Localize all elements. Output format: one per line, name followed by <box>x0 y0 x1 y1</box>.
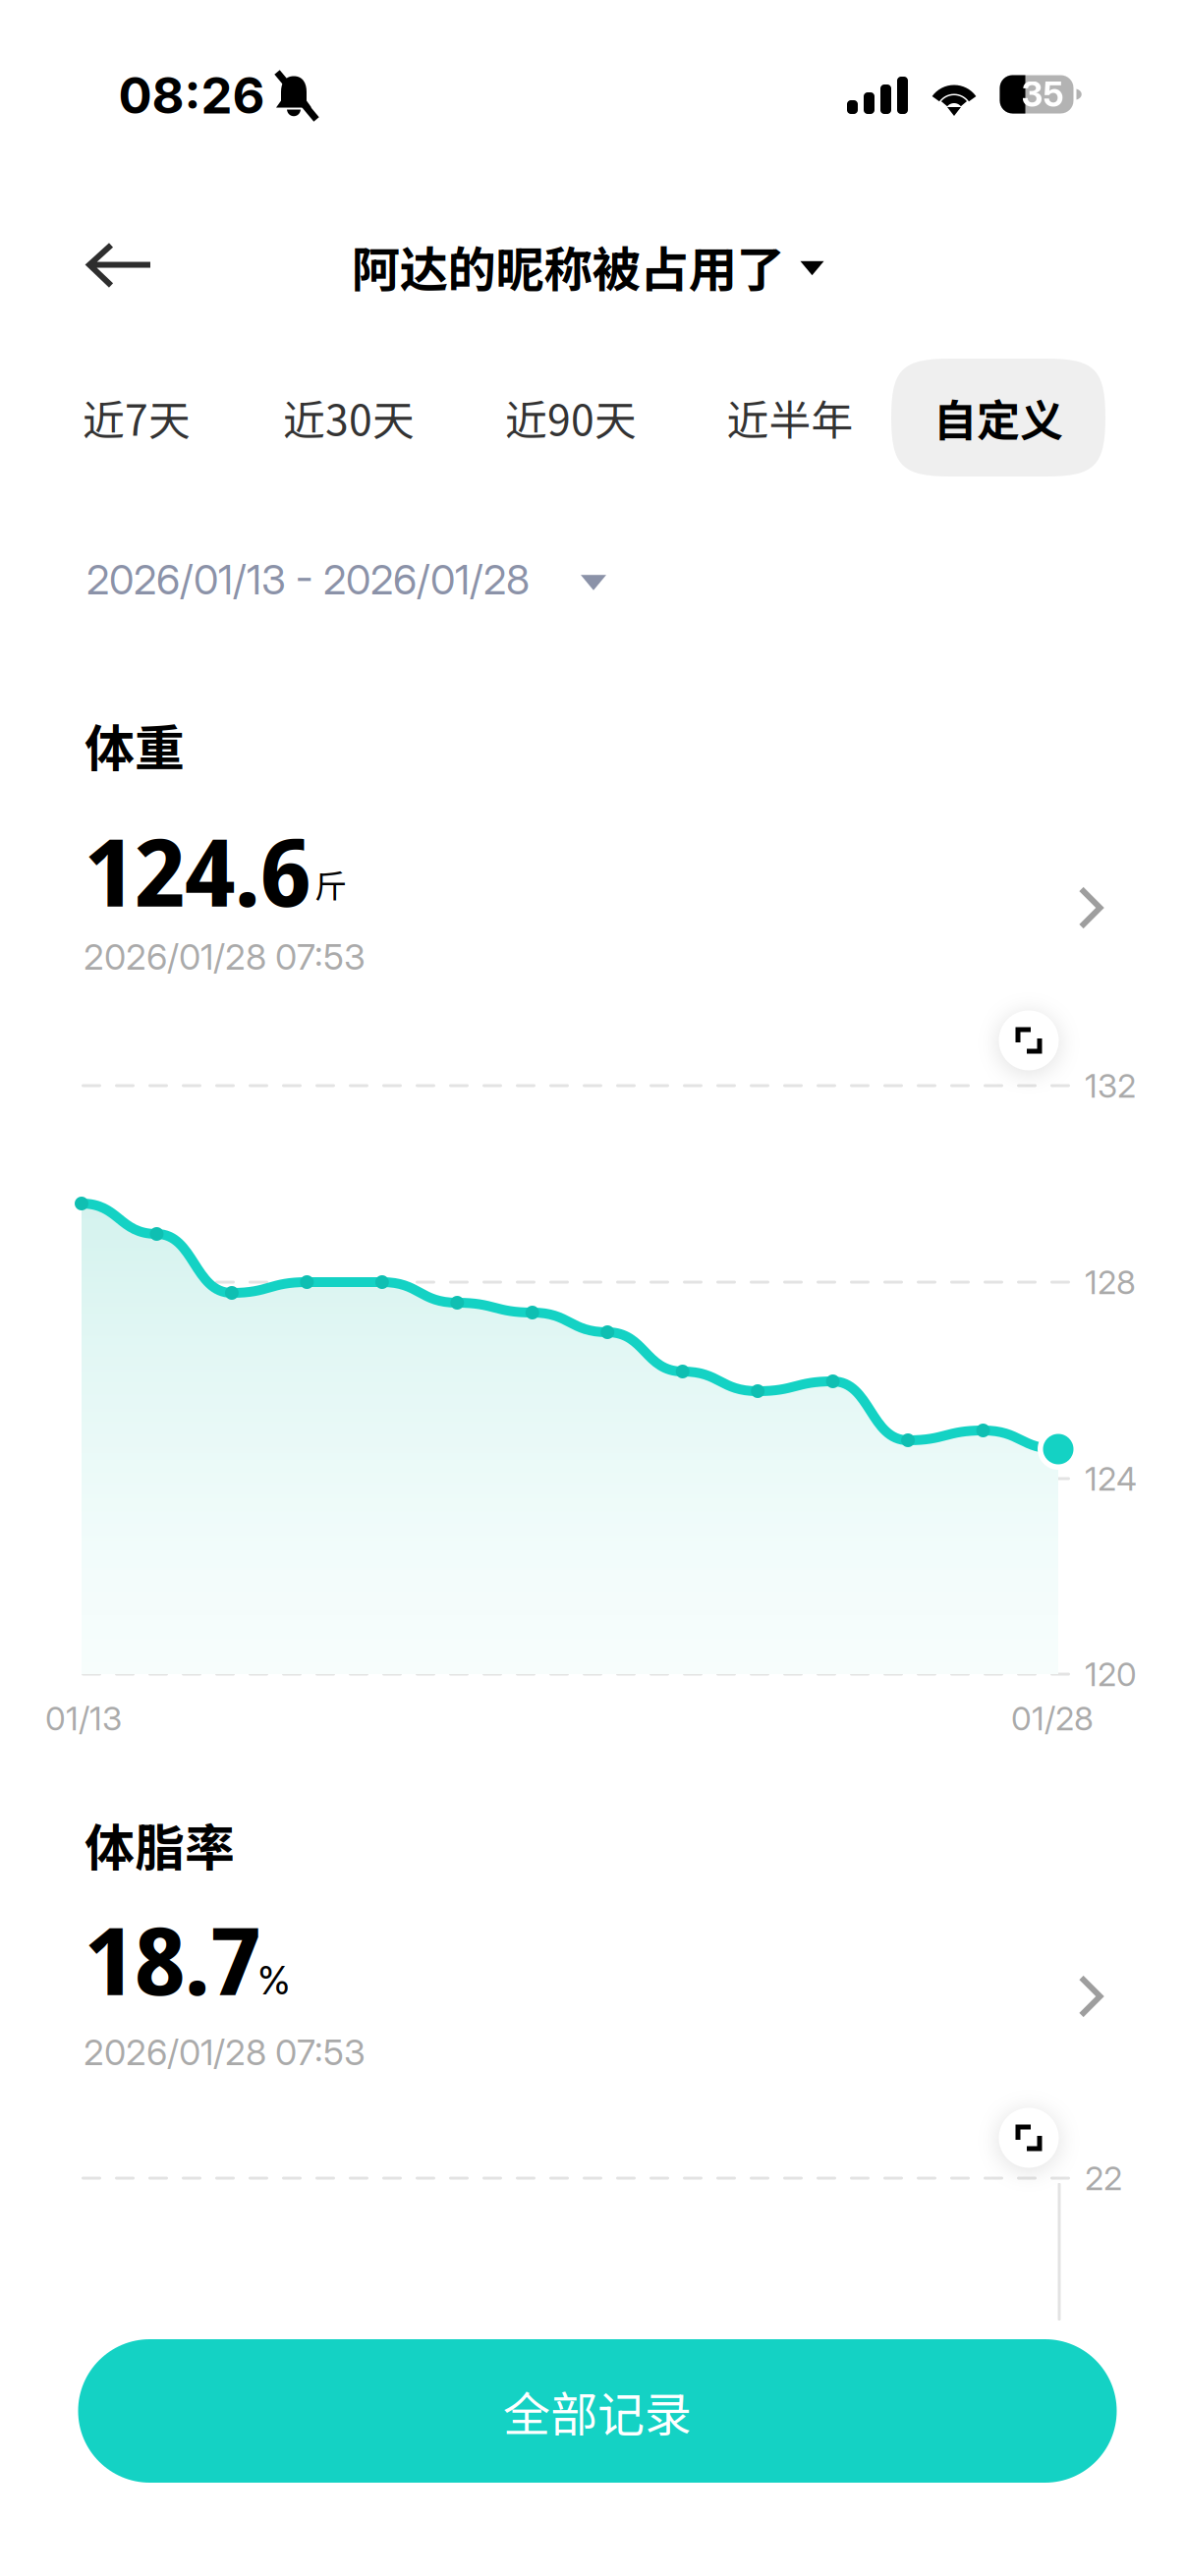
staticText: 2026/01/28 07:53 <box>84 935 366 978</box>
staticText: 近7天 <box>83 387 191 448</box>
staticText: 22 <box>1085 2158 1122 2198</box>
staticText: 124.6 <box>85 807 310 934</box>
staticText: 132 <box>1085 1066 1136 1105</box>
staticText: % <box>257 1958 291 2004</box>
staticText: 近90天 <box>505 387 637 448</box>
staticText: 2026/01/13 - 2026/01/28 <box>86 555 530 604</box>
staticText: 18.7 <box>85 1896 260 2022</box>
staticText: 阿达的昵称被占用了 <box>351 231 785 301</box>
staticText: 08:26 <box>118 65 265 125</box>
button[interactable]: 2026/01/13 - 2026/01/28 <box>86 532 1167 627</box>
button[interactable]: Expand chart <box>999 2108 1059 2168</box>
staticText: 01/13 <box>45 1698 122 1738</box>
button[interactable]: Back <box>61 211 179 319</box>
staticText: 斤 <box>314 861 347 908</box>
button[interactable]: 全部记录 <box>78 2339 1117 2483</box>
staticText: 体重 <box>85 709 185 781</box>
staticText: 自定义 <box>933 386 1063 449</box>
staticText: 近半年 <box>727 387 853 448</box>
staticText: 35 <box>1021 74 1064 115</box>
staticText: 体脂率 <box>85 1808 235 1880</box>
button[interactable]: Open 体重 details <box>1056 868 1125 947</box>
staticText: 01/28 <box>1011 1698 1094 1738</box>
button[interactable]: 近90天 <box>505 364 637 472</box>
staticText: 2026/01/28 07:53 <box>84 2031 366 2074</box>
button[interactable]: 阿达的昵称被占用了 <box>351 212 824 320</box>
staticText: 128 <box>1085 1262 1136 1302</box>
button[interactable]: 近半年 <box>727 364 853 472</box>
button[interactable]: 自定义 <box>891 359 1105 476</box>
button[interactable]: 近7天 <box>83 364 191 472</box>
staticText: 全部记录 <box>503 2377 692 2445</box>
staticText: 124 <box>1085 1459 1137 1498</box>
button[interactable]: 近30天 <box>283 364 415 472</box>
staticText: 近30天 <box>283 387 415 448</box>
staticText: 120 <box>1085 1654 1137 1694</box>
button[interactable]: Open 体脂率 details <box>1056 1957 1125 2036</box>
button[interactable]: Expand chart <box>999 1010 1059 1070</box>
